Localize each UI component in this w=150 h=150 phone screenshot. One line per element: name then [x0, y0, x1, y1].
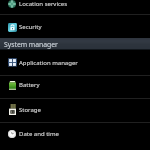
staticText: Storage [19, 106, 150, 114]
staticText: Security [19, 23, 150, 31]
button[interactable]: Storage [0, 99, 150, 122]
button[interactable]: Security [0, 15, 150, 39]
button[interactable]: Battery [0, 76, 150, 98]
button[interactable]: Location services [0, 0, 150, 14]
staticText: Battery [19, 81, 150, 89]
staticText: Application manager [19, 59, 150, 67]
button[interactable]: Date and time [0, 123, 150, 146]
staticText: Location services [19, 0, 150, 8]
staticText: System manager [4, 40, 58, 49]
button[interactable]: Application manager [0, 51, 150, 76]
staticText: Date and time [19, 130, 150, 138]
